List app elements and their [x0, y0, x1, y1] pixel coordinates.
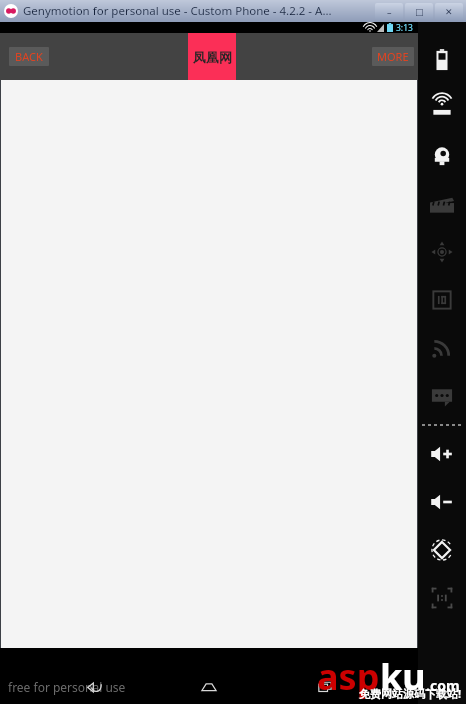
button[interactable]: Rotate	[418, 526, 466, 574]
button[interactable]: GPS	[418, 84, 466, 132]
button[interactable]: Volume up	[418, 430, 466, 478]
staticText: –	[387, 6, 392, 18]
button[interactable]: SMS	[418, 372, 466, 420]
button[interactable]: Home	[187, 665, 231, 704]
button[interactable]: MORE	[372, 47, 414, 66]
button[interactable]: 凤凰网	[188, 33, 236, 80]
button[interactable]: Identifiers	[418, 276, 466, 324]
button[interactable]: □	[405, 3, 433, 20]
staticText: .com	[426, 676, 460, 695]
button[interactable]: Battery	[418, 36, 466, 84]
staticText: ✕	[445, 7, 453, 17]
button[interactable]: Network	[418, 324, 466, 372]
button[interactable]: Scale 1:1	[418, 574, 466, 622]
button[interactable]: –	[375, 3, 403, 20]
staticText: 3:13	[396, 22, 413, 33]
button[interactable]: Video recording	[418, 180, 466, 228]
button[interactable]: Volume down	[418, 478, 466, 526]
button[interactable]: Camera	[418, 132, 466, 180]
staticText: free for personal use	[8, 679, 126, 695]
staticText: Genymotion for personal use - Custom Pho…	[23, 3, 332, 19]
staticText: BACK	[15, 49, 43, 64]
button[interactable]: Back	[72, 665, 116, 704]
button[interactable]: BACK	[9, 47, 49, 66]
staticText: 凤凰网	[193, 49, 232, 65]
staticText: asp	[317, 652, 380, 701]
staticText: ku	[380, 652, 426, 701]
button[interactable]: Accelerometer	[418, 228, 466, 276]
staticText: □	[415, 7, 424, 17]
staticText: 免费网站源码下载站!	[359, 686, 462, 701]
staticText: MORE	[377, 49, 409, 64]
button[interactable]: ✕	[435, 3, 463, 20]
button[interactable]: Recent apps	[303, 665, 347, 704]
